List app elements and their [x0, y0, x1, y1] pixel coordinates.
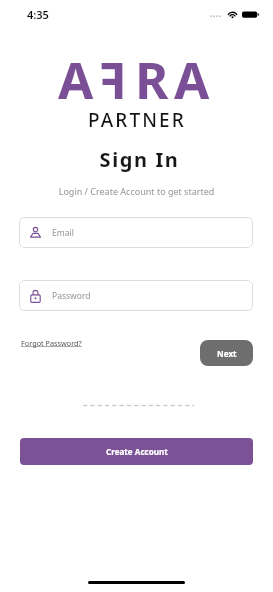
staticText: A [58, 44, 94, 113]
staticText: 4:35 [27, 7, 49, 22]
button[interactable]: Create Account [20, 438, 253, 465]
staticText: Email [52, 227, 74, 239]
button[interactable]: Next [200, 340, 253, 366]
staticText: A [174, 44, 210, 113]
button[interactable]: Password [19, 280, 253, 311]
button[interactable]: Forgot Password? [21, 338, 82, 348]
button[interactable]: Email [19, 217, 253, 248]
staticText: Password [52, 290, 91, 302]
staticText: Next [217, 348, 237, 359]
staticText: Create Account [106, 446, 168, 457]
staticText: Login / Create Account to get started [0, 185, 273, 197]
staticText: PARTNER [88, 107, 186, 133]
staticText: R [135, 44, 169, 113]
staticText: Sign In [3, 146, 273, 173]
staticText: F [99, 44, 127, 113]
staticText: Forgot Password? [21, 338, 82, 348]
